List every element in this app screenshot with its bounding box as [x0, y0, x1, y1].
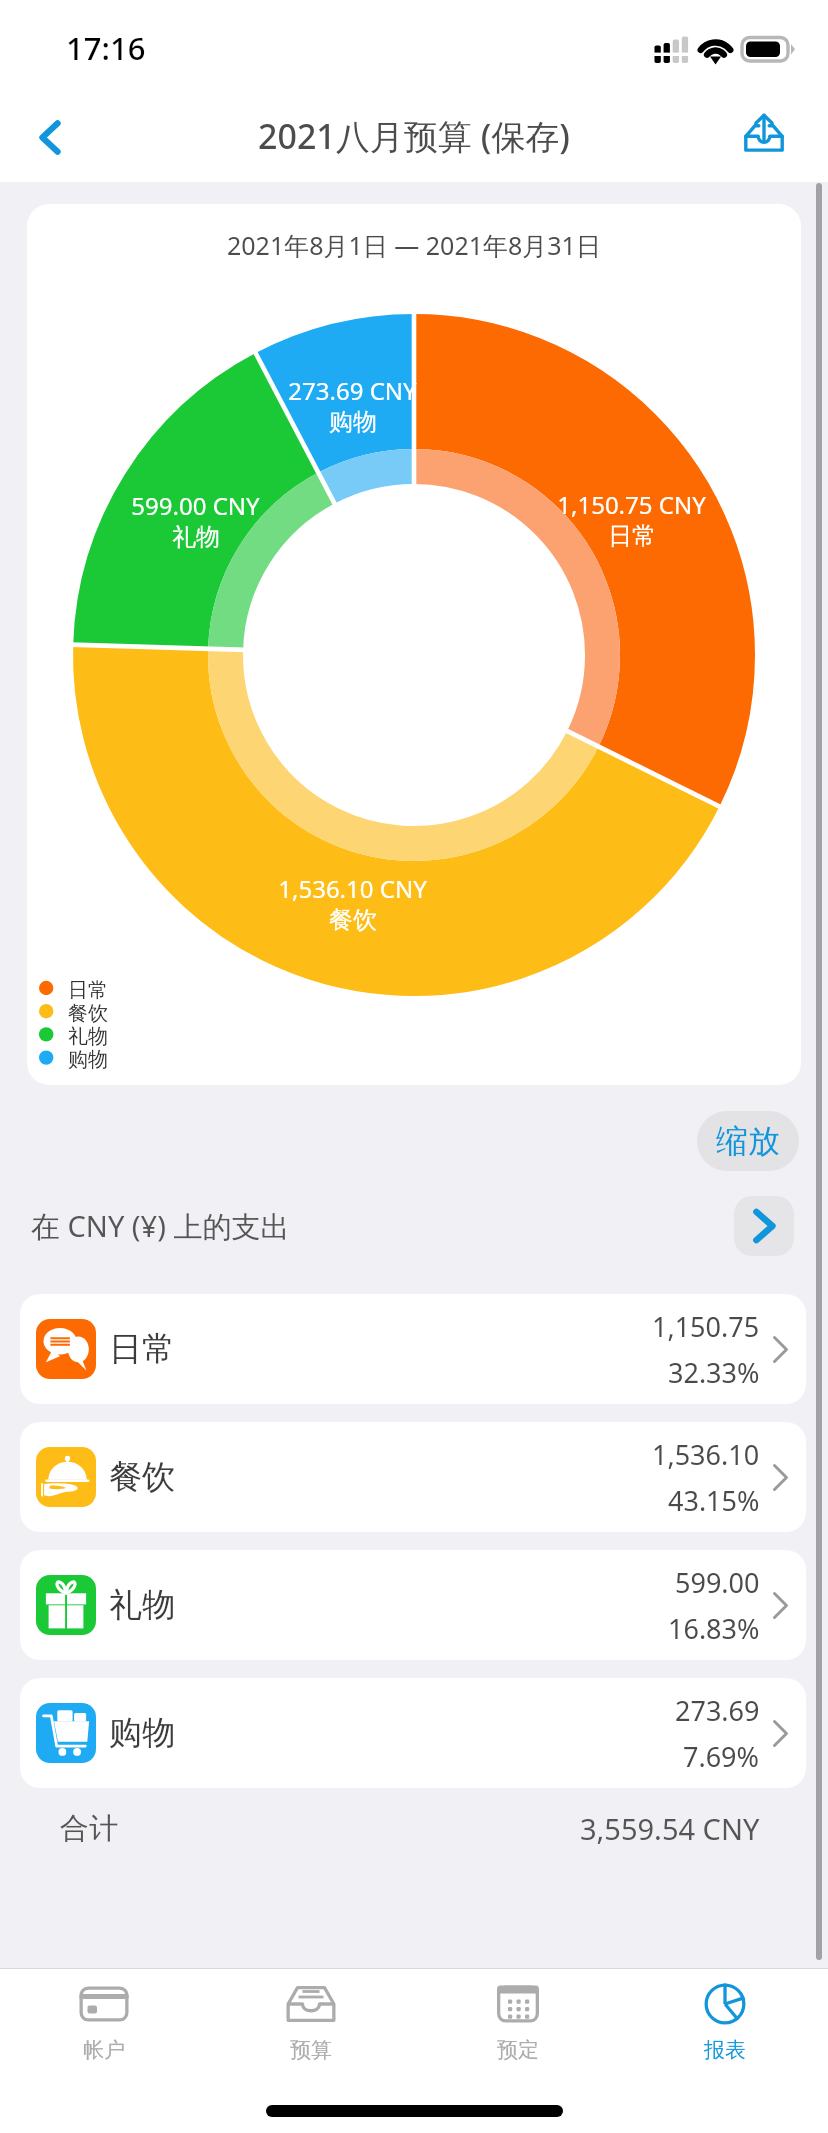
button[interactable]: 缩放: [697, 1111, 799, 1171]
button[interactable]: Export: [730, 100, 798, 168]
button[interactable]: Back: [16, 103, 84, 171]
staticText: 599.00 CNY: [131, 489, 260, 522]
staticText: 16.83%: [668, 1610, 760, 1647]
button[interactable]: 预算: [207, 1968, 414, 2068]
staticText: 1,150.75 CNY: [557, 488, 706, 521]
button[interactable]: 餐饮: [20, 1422, 806, 1532]
staticText: 预定: [497, 2037, 539, 2063]
staticText: 购物: [109, 1712, 175, 1754]
staticText: 在 CNY (¥) 上的支出: [31, 1206, 290, 1246]
staticText: 3,559.54 CNY: [580, 1809, 760, 1848]
staticText: 礼物: [68, 1024, 108, 1047]
button[interactable]: 礼物: [20, 1550, 806, 1660]
staticText: 礼物: [172, 522, 220, 552]
staticText: 预算: [290, 2037, 332, 2063]
staticText: 599.00: [675, 1564, 760, 1601]
staticText: 餐饮: [68, 1001, 108, 1024]
staticText: 礼物: [109, 1584, 175, 1626]
button[interactable]: 报表: [621, 1968, 828, 2068]
staticText: 日常: [109, 1328, 175, 1370]
button[interactable]: 预定: [414, 1968, 621, 2068]
staticText: 273.69: [675, 1692, 760, 1729]
staticText: 2021八月预算 (保存): [258, 113, 570, 159]
staticText: 日常: [608, 521, 656, 551]
staticText: 1,150.75: [652, 1308, 760, 1345]
button[interactable]: 购物: [20, 1678, 806, 1788]
staticText: 购物: [68, 1047, 108, 1070]
staticText: 2021年8月1日 — 2021年8月31日: [227, 228, 601, 262]
button[interactable]: 日常: [20, 1294, 806, 1404]
staticText: 43.15%: [668, 1482, 760, 1519]
button[interactable]: Next: [734, 1196, 794, 1256]
staticText: 帐户: [83, 2037, 125, 2063]
staticText: 餐饮: [109, 1456, 175, 1498]
staticText: 273.69 CNY: [288, 374, 417, 407]
staticText: 7.69%: [683, 1738, 760, 1775]
staticText: 32.33%: [668, 1354, 760, 1391]
button[interactable]: 帐户: [0, 1968, 207, 2068]
staticText: 17:16: [66, 27, 146, 69]
staticText: 购物: [329, 407, 377, 437]
staticText: 报表: [704, 2037, 746, 2063]
staticText: 缩放: [716, 1121, 780, 1161]
staticText: 餐饮: [329, 905, 377, 935]
staticText: 1,536.10 CNY: [278, 872, 427, 905]
staticText: 合计: [60, 1810, 118, 1847]
staticText: 1,536.10: [652, 1436, 760, 1473]
staticText: 日常: [68, 978, 108, 1001]
